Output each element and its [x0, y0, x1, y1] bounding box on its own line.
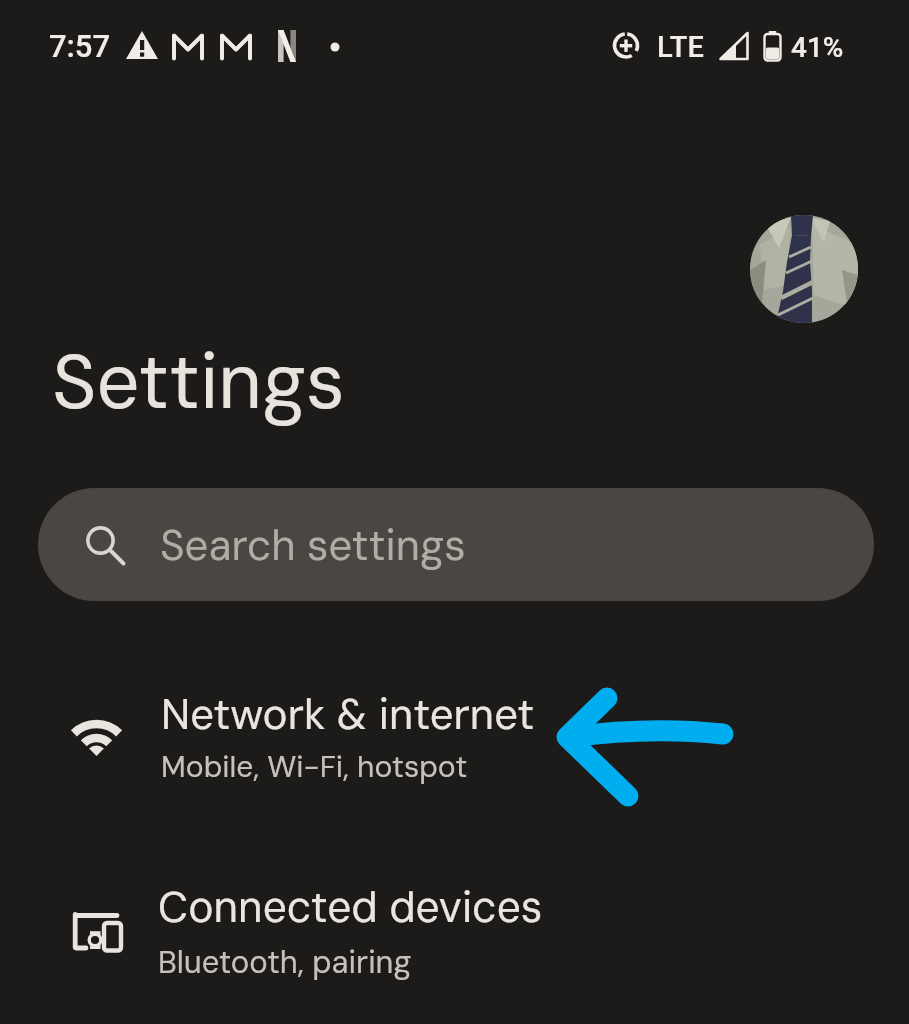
staticText: Network & internet [161, 687, 535, 742]
staticText: Search settings [160, 518, 466, 573]
staticText: Mobile, Wi-Fi, hotspot [161, 747, 468, 786]
staticText: Bluetooth, pairing [158, 942, 412, 982]
staticText: 41% [791, 31, 844, 64]
staticText: LTE [657, 30, 704, 64]
button[interactable] [0, 660, 909, 808]
button[interactable] [750, 215, 858, 323]
button[interactable] [0, 850, 909, 1010]
staticText: Settings [52, 333, 345, 432]
button[interactable] [38, 488, 874, 601]
staticText: 7:57 [49, 28, 111, 64]
staticText: Connected devices [158, 880, 543, 935]
